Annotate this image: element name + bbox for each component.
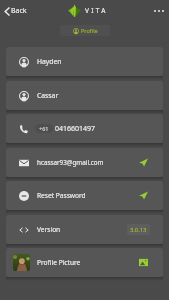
button[interactable]: Version (6, 215, 163, 244)
staticText: Reset Password (37, 191, 86, 200)
button[interactable]: Back (0, 3, 33, 19)
staticText: Cassar (37, 91, 59, 100)
button[interactable]: hcassar93@gmail.com (6, 148, 163, 177)
button[interactable]: Hayden (6, 47, 163, 76)
staticText: Hayden (37, 57, 62, 66)
staticText: Profile (81, 27, 98, 34)
button[interactable]: Cassar (6, 81, 163, 110)
staticText: 0416601497 (55, 124, 96, 134)
staticText: VITA (85, 6, 108, 15)
staticText: 3.0.13 (130, 226, 147, 234)
button[interactable]: Change profile picture (133, 252, 163, 273)
button[interactable]: Profile (60, 25, 110, 36)
staticText: hcassar93@gmail.com (37, 158, 104, 167)
staticText: +61 (39, 125, 49, 132)
button[interactable]: More options (149, 5, 169, 17)
button[interactable]: Reset Password (6, 181, 163, 210)
staticText: Profile Picture (37, 258, 81, 267)
button[interactable]: +61 (6, 114, 163, 143)
button[interactable]: Profile Picture (6, 248, 163, 277)
button[interactable]: Send (133, 185, 163, 206)
button[interactable]: Send (133, 152, 163, 173)
staticText: Version (37, 225, 61, 234)
staticText: Back (11, 6, 27, 16)
